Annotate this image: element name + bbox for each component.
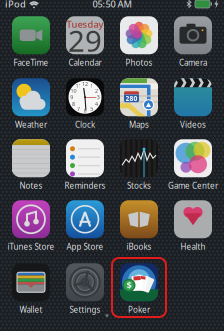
button[interactable]: 12 (58, 77, 112, 129)
staticText: 8 (72, 100, 75, 107)
staticText: Tuesday (66, 18, 103, 30)
staticText: 1 (90, 82, 93, 89)
button[interactable]: Reminders (58, 138, 112, 190)
staticText: 5 (90, 105, 93, 112)
button[interactable]: 280 (112, 77, 166, 129)
staticText: Game Center (168, 180, 218, 191)
staticText: Poker (128, 304, 150, 315)
button[interactable]: Stocks (112, 138, 166, 190)
staticText: iTunes Store (7, 241, 54, 252)
staticText: 280 (125, 94, 137, 103)
button[interactable]: Game Center (166, 138, 220, 190)
staticText: Videos (180, 119, 206, 130)
button[interactable]: Health (166, 199, 220, 251)
button[interactable]: Photos (112, 15, 166, 67)
staticText: Health (180, 241, 205, 252)
staticText: Weather (15, 119, 47, 130)
staticText: Camera (179, 57, 207, 68)
button[interactable]: iBooks (112, 199, 166, 251)
button[interactable]: Notes (4, 138, 58, 190)
button[interactable]: iTunes Store (4, 199, 58, 251)
staticText: 4 (95, 100, 98, 107)
staticText: App Store (66, 241, 103, 252)
staticText: Stocks (127, 180, 151, 191)
staticText: 2 (95, 87, 98, 94)
staticText: Photos (125, 57, 152, 68)
staticText: iPod (5, 0, 26, 10)
button[interactable]: FaceTime (4, 15, 58, 67)
button[interactable]: Tuesday (58, 15, 112, 67)
button[interactable]: Weather (4, 77, 58, 129)
staticText: 11 (75, 82, 81, 89)
staticText: Clock (75, 119, 95, 130)
staticText: Maps (129, 119, 149, 130)
staticText: 6 (83, 107, 86, 114)
button[interactable]: Wallet (4, 262, 58, 314)
staticText: 29 (68, 21, 102, 60)
button[interactable]: Videos (166, 77, 220, 129)
staticText: 3 (97, 94, 100, 101)
staticText: FaceTime (13, 57, 48, 68)
button[interactable]: App Store (58, 199, 112, 251)
staticText: Wallet (19, 304, 42, 315)
staticText: Settings (69, 304, 100, 315)
staticText: 9 (70, 94, 73, 101)
staticText: 05:50 AM (92, 0, 132, 10)
button[interactable]: Settings (58, 262, 112, 314)
button[interactable]: $ (112, 262, 166, 314)
staticText: Calendar (68, 57, 101, 68)
staticText: iBooks (126, 241, 151, 252)
staticText: 7 (77, 105, 80, 112)
staticText: 12 (82, 80, 88, 87)
staticText: Reminders (64, 180, 105, 191)
button[interactable]: Camera (166, 15, 220, 67)
staticText: Notes (19, 180, 42, 191)
staticText: 10 (70, 87, 76, 94)
staticText: $ (126, 279, 131, 291)
